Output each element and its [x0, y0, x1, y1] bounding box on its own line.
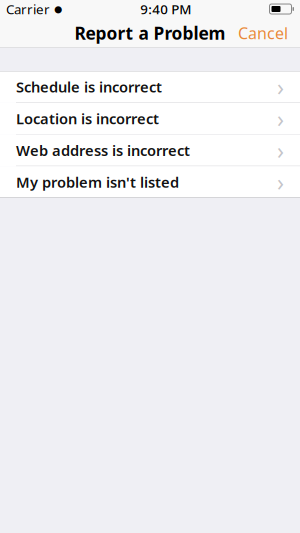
staticText: Carrier — [6, 0, 50, 18]
staticText: My problem isn't listed — [16, 172, 179, 192]
button[interactable]: Location is incorrect — [0, 103, 300, 135]
staticText: ● — [54, 4, 62, 14]
staticText: Schedule is incorrect — [16, 77, 162, 97]
staticText: Report a Problem — [74, 21, 225, 44]
staticText: › — [277, 72, 284, 102]
staticText: › — [277, 135, 284, 165]
staticText: › — [277, 104, 284, 134]
staticText: Location is incorrect — [16, 109, 159, 128]
staticText: 9:40 PM — [140, 0, 191, 18]
staticText: Web address is incorrect — [16, 141, 190, 160]
button[interactable]: Schedule is incorrect — [0, 71, 300, 103]
button[interactable]: Web address is incorrect — [0, 134, 300, 166]
button[interactable]: My problem isn't listed — [0, 166, 300, 198]
staticText: Cancel — [238, 22, 288, 44]
staticText: › — [277, 167, 284, 197]
button[interactable]: Cancel — [230, 16, 296, 50]
